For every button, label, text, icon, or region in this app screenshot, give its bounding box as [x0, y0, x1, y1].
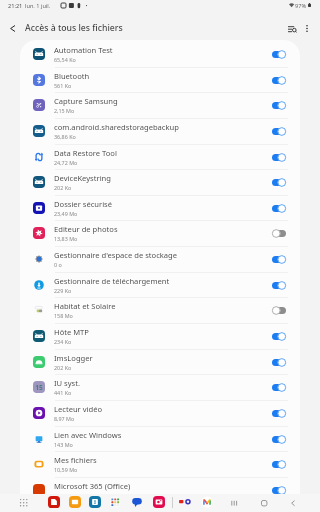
button[interactable]: com.android.sharedstoragebackup [20, 118, 300, 144]
staticText: Gestionnaire de téléchargement [54, 276, 170, 286]
staticText: 63,93 Mo [54, 492, 78, 499]
button[interactable]: Autorisation activée [272, 460, 286, 469]
button[interactable]: Autorisation activée [272, 332, 286, 341]
staticText: 23,49 Mo [54, 210, 78, 217]
staticText: 65,54 Ko [54, 56, 76, 63]
staticText: 24,72 Mo [54, 159, 78, 166]
staticText: Bluetooth [54, 71, 90, 81]
button[interactable]: Back [2, 17, 23, 40]
staticText: 36,86 Ko [54, 133, 76, 140]
staticText: Mes fichiers [54, 455, 97, 465]
button[interactable]: Autorisation activée [272, 204, 286, 213]
staticText: 229 Ko [54, 287, 72, 294]
button[interactable]: Data Restore Tool [20, 144, 300, 170]
staticText: 97% [295, 2, 307, 10]
button[interactable]: Gestionnaire de téléchargement [20, 272, 300, 298]
staticText: Lecteur vidéo [54, 404, 103, 414]
staticText: 158 Mo [54, 312, 73, 319]
staticText: 10,59 Mo [54, 466, 78, 473]
button[interactable]: Gestionnaire d'espace de stockage [20, 246, 300, 272]
staticText: Microsoft 365 (Office) [54, 481, 131, 491]
button[interactable]: Back [285, 495, 300, 510]
button[interactable]: Applications récentes [180, 495, 194, 509]
button[interactable]: Search and filter [283, 17, 302, 40]
button[interactable]: Autorisation activée [272, 153, 286, 162]
staticText: Automation Test [54, 45, 113, 55]
button[interactable]: Habitat et Solaire [20, 297, 300, 323]
staticText: DeviceKeystring [54, 173, 111, 183]
staticText: Gestionnaire d'espace de stockage [54, 250, 178, 260]
staticText: 441 Ko [54, 389, 72, 396]
button[interactable]: Gmail [200, 495, 214, 509]
button[interactable]: Galerie [152, 495, 166, 509]
button[interactable]: Autorisation activée [272, 281, 286, 290]
button[interactable]: ImsLogger [20, 349, 300, 375]
button[interactable]: Automation Test [20, 41, 300, 67]
staticText: Capture Samsung [54, 96, 118, 106]
staticText: 202 Ko [54, 364, 72, 371]
button[interactable]: Microsoft 365 (Office) [20, 477, 300, 503]
staticText: 8,97 Mo [54, 415, 75, 422]
button[interactable]: 15 [20, 374, 300, 400]
button[interactable]: Home [256, 495, 271, 510]
staticText: IU syst. [54, 378, 81, 388]
staticText: 2,15 Mo [54, 107, 75, 114]
staticText: 0 o [54, 261, 62, 268]
button[interactable]: Autorisation activée [272, 435, 286, 444]
button[interactable]: Messages [130, 495, 144, 509]
staticText: 202 Ko [54, 184, 72, 191]
button[interactable]: Editeur de photos [20, 220, 300, 246]
staticText: 234 Ko [54, 338, 72, 345]
staticText: lun. 1 juil. [25, 2, 51, 10]
staticText: 21:21 [8, 2, 23, 10]
button[interactable]: Mes fichiers [20, 451, 300, 477]
button[interactable]: Recents [226, 495, 241, 510]
button[interactable]: Autorisation activée [272, 127, 286, 136]
button[interactable]: Autorisation activée [272, 178, 286, 187]
button[interactable]: Autorisation activée [272, 383, 286, 392]
button[interactable]: Lecteur vidéo [20, 400, 300, 426]
button[interactable]: Autorisation activée [272, 101, 286, 110]
staticText: 143 Mo [54, 441, 73, 448]
button[interactable]: Autorisation activée [272, 76, 286, 85]
button[interactable]: Autorisation activée [272, 255, 286, 264]
button[interactable]: Autorisation activée [272, 358, 286, 367]
button[interactable]: Autorisation activée [272, 50, 286, 59]
button[interactable]: Hôte MTP [20, 323, 300, 349]
staticText: Accès à tous les fichiers [25, 22, 123, 34]
button[interactable]: Galaxy Store [88, 495, 102, 509]
staticText: Habitat et Solaire [54, 301, 116, 311]
button[interactable]: Google [108, 495, 122, 509]
button[interactable]: Capture Samsung [20, 92, 300, 118]
staticText: 561 Ko [54, 82, 72, 89]
staticText: com.android.sharedstoragebackup [54, 122, 179, 132]
button[interactable]: Apps [16, 495, 30, 509]
button[interactable]: Autorisation désactivée [272, 229, 286, 238]
staticText: Data Restore Tool [54, 148, 117, 158]
button[interactable]: Samsung Notes [47, 495, 61, 509]
button[interactable]: Autorisation désactivée [272, 306, 286, 315]
button[interactable]: Autorisation activée [272, 486, 286, 495]
button[interactable]: Dossier sécurisé [20, 195, 300, 221]
button[interactable]: Mes fichiers [68, 495, 82, 509]
button[interactable]: Bluetooth [20, 67, 300, 93]
button[interactable]: DeviceKeystring [20, 169, 300, 195]
staticText: Lien avec Windows [54, 430, 122, 440]
staticText: Hôte MTP [54, 327, 89, 337]
button[interactable]: Lien avec Windows [20, 426, 300, 452]
staticText: 15 [35, 383, 43, 392]
staticText: Dossier sécurisé [54, 199, 113, 209]
staticText: 13,83 Mo [54, 235, 78, 242]
staticText: ImsLogger [54, 353, 93, 363]
button[interactable]: Autorisation activée [272, 409, 286, 418]
button[interactable]: More options [300, 17, 314, 40]
staticText: Editeur de photos [54, 224, 118, 234]
